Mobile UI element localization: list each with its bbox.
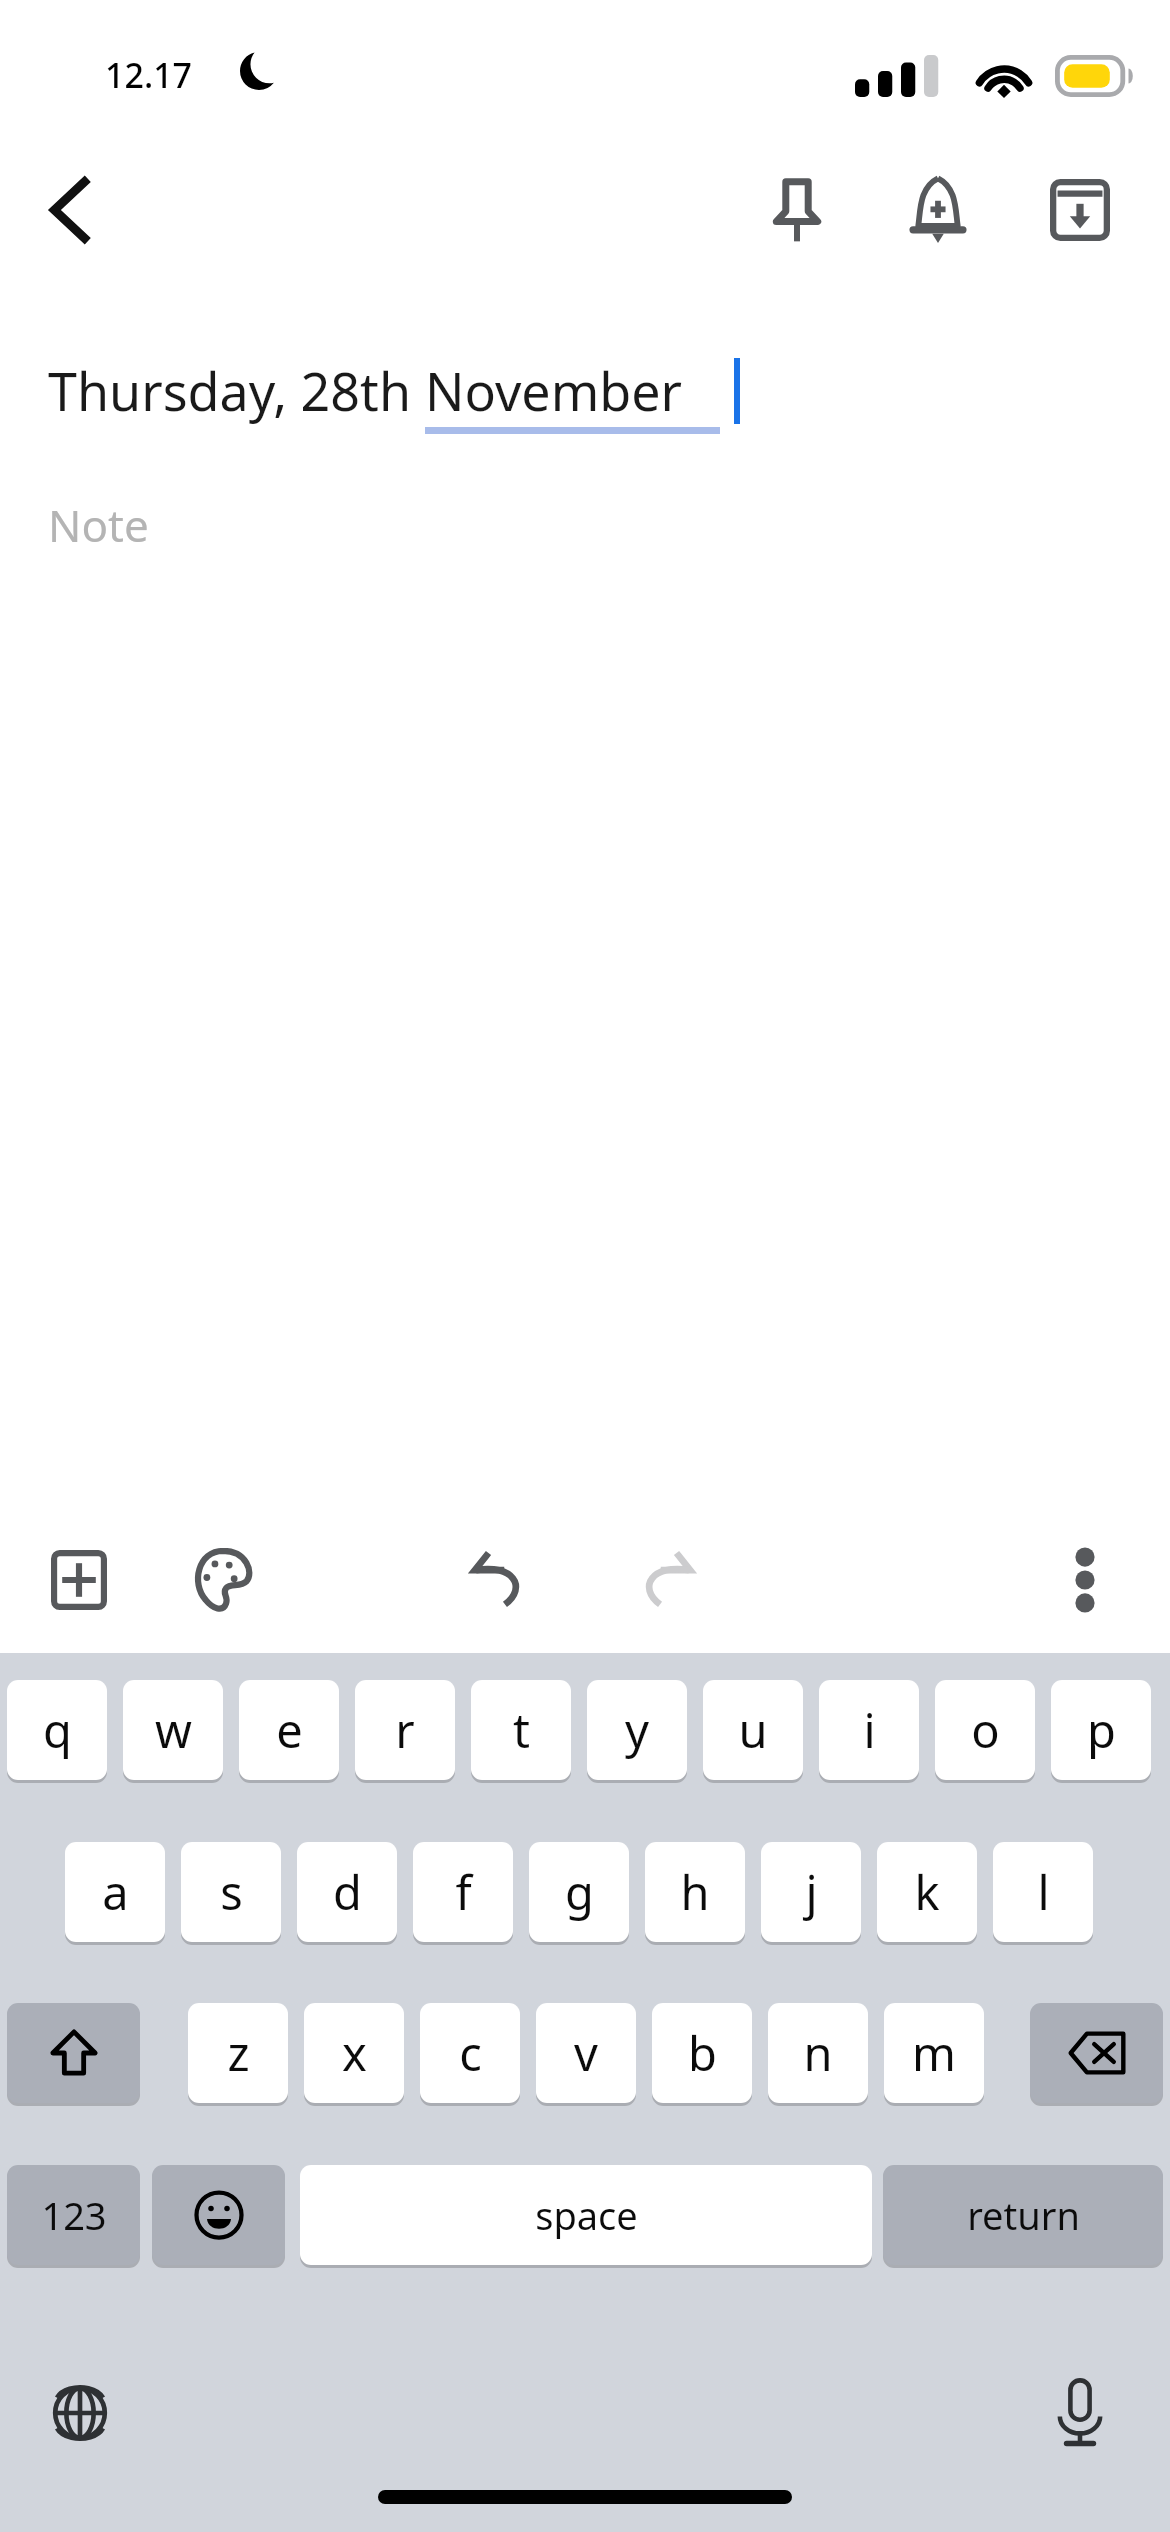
staticText: j [805, 1860, 818, 1924]
staticText: d [333, 1860, 362, 1924]
button[interactable]: return [883, 2165, 1163, 2265]
staticText: x [342, 2021, 367, 2085]
staticText: k [914, 1860, 940, 1924]
button[interactable]: q [7, 1680, 107, 1780]
button[interactable]: u [703, 1680, 803, 1780]
button[interactable]: p [1051, 1680, 1151, 1780]
staticText: r [395, 1698, 415, 1762]
button[interactable]: d [297, 1842, 397, 1942]
button[interactable]: e [239, 1680, 339, 1780]
button[interactable]: f [413, 1842, 513, 1942]
staticText: h [680, 1860, 710, 1924]
button[interactable]: Pin [737, 150, 857, 270]
button[interactable]: Switch keyboard [20, 2353, 140, 2473]
staticText: return [967, 2189, 1080, 2241]
staticText: v [574, 2021, 598, 2085]
staticText: November [425, 355, 683, 426]
staticText: o [971, 1698, 1000, 1762]
staticText: g [565, 1860, 594, 1924]
button[interactable]: l [993, 1842, 1093, 1942]
button[interactable]: r [355, 1680, 455, 1780]
button[interactable]: m [884, 2003, 984, 2103]
button[interactable]: w [123, 1680, 223, 1780]
staticText: f [455, 1860, 472, 1924]
staticText: c [459, 2021, 482, 2085]
button[interactable]: y [587, 1680, 687, 1780]
button[interactable]: Add [24, 1525, 134, 1635]
staticText: y [625, 1698, 649, 1762]
button[interactable]: n [768, 2003, 868, 2103]
button[interactable]: a [65, 1842, 165, 1942]
button[interactable]: z [188, 2003, 288, 2103]
button[interactable]: j [761, 1842, 861, 1942]
button[interactable]: c [420, 2003, 520, 2103]
button[interactable]: b [652, 2003, 752, 2103]
button[interactable]: v [536, 2003, 636, 2103]
staticText: a [102, 1860, 129, 1924]
staticText: s [220, 1860, 243, 1924]
staticText: i [863, 1698, 876, 1762]
button[interactable]: Thursday, 28th [48, 355, 740, 426]
button[interactable]: h [645, 1842, 745, 1942]
button[interactable]: Add reminder [878, 150, 998, 270]
button[interactable]: t [471, 1680, 571, 1780]
button[interactable]: g [529, 1842, 629, 1942]
button[interactable]: Emoji [152, 2165, 285, 2265]
staticText: q [43, 1698, 72, 1762]
button[interactable]: Colour [168, 1525, 278, 1635]
button[interactable]: Undo [443, 1525, 553, 1635]
staticText: Thursday, 28th [48, 355, 425, 426]
staticText: l [1037, 1860, 1050, 1924]
button[interactable]: space [300, 2165, 872, 2265]
button[interactable]: Backspace [1030, 2003, 1163, 2103]
staticText: b [688, 2021, 717, 2085]
staticText: p [1087, 1698, 1116, 1762]
staticText: t [513, 1698, 530, 1762]
button[interactable]: Archive [1020, 150, 1140, 270]
staticText: 12.17 [105, 52, 193, 98]
button[interactable]: i [819, 1680, 919, 1780]
staticText: e [276, 1698, 303, 1762]
button[interactable]: Redo [612, 1525, 722, 1635]
button[interactable]: More options [1030, 1525, 1140, 1635]
button[interactable]: x [304, 2003, 404, 2103]
button[interactable]: 123 [7, 2165, 140, 2265]
button[interactable]: s [181, 1842, 281, 1942]
button[interactable]: Voice input [1020, 2353, 1140, 2473]
staticText: space [535, 2189, 638, 2241]
staticText: n [803, 2021, 833, 2085]
staticText: w [155, 1698, 192, 1762]
button[interactable]: Shift [7, 2003, 140, 2103]
staticText: Note [48, 495, 149, 555]
staticText: z [227, 2021, 250, 2085]
staticText: 123 [41, 2189, 107, 2241]
staticText: m [912, 2021, 956, 2085]
staticText: u [738, 1698, 768, 1762]
button[interactable]: Back [10, 150, 130, 270]
button[interactable]: o [935, 1680, 1035, 1780]
button[interactable]: k [877, 1842, 977, 1942]
